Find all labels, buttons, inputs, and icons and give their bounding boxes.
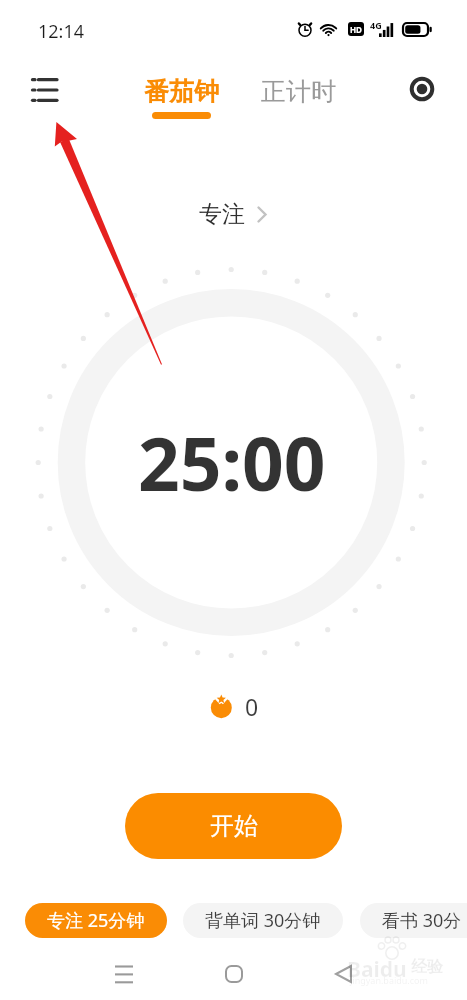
staticText: HD — [350, 24, 362, 35]
staticText: 12:14 — [38, 19, 85, 44]
staticText: 看书 30分钟 — [382, 908, 467, 933]
button[interactable]: 正计时 — [251, 68, 346, 115]
staticText: 专注 — [199, 200, 245, 229]
staticText: 开始 — [210, 811, 258, 841]
staticText: 经验 — [411, 957, 443, 977]
staticText: jingyan.baidu.com — [350, 974, 428, 986]
button[interactable]: 开始 — [125, 793, 342, 859]
button[interactable]: Recents — [104, 954, 144, 994]
button[interactable]: Home — [214, 954, 254, 994]
staticText: 正计时 — [261, 76, 336, 107]
button[interactable]: 看书 30分钟 — [360, 903, 467, 938]
button[interactable]: 专注 25分钟 — [25, 903, 167, 938]
staticText: 专注 25分钟 — [47, 908, 145, 933]
button[interactable]: Menu — [20, 66, 68, 114]
button[interactable]: 背单词 30分钟 — [183, 903, 343, 938]
button[interactable]: Record — [400, 67, 444, 111]
button[interactable]: 番茄钟 — [134, 68, 229, 127]
button[interactable]: 专注 — [189, 196, 277, 233]
button[interactable]: Back — [323, 954, 363, 994]
staticText: 4G — [370, 19, 382, 31]
staticText: 25:00 — [138, 413, 326, 512]
staticText: 0 — [245, 691, 259, 722]
staticText: 背单词 30分钟 — [205, 908, 321, 933]
staticText: 番茄钟 — [144, 76, 219, 107]
staticText: Baidu — [347, 955, 407, 984]
